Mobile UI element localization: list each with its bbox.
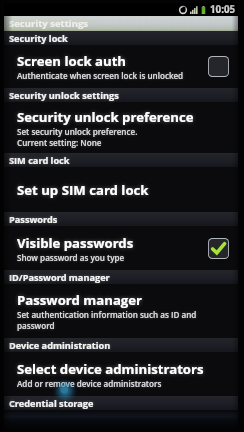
staticText: Select device administrators xyxy=(17,360,204,378)
staticText: Visible passwords xyxy=(17,234,134,252)
staticText: Security lock xyxy=(9,32,68,45)
staticText: Set authentication information such as I… xyxy=(17,309,197,320)
staticText: Authenticate when screen lock is unlocke… xyxy=(17,70,184,81)
staticText: Add or remove device administrators xyxy=(17,378,162,389)
staticText: Security settings xyxy=(9,17,88,30)
button[interactable]: Security lock xyxy=(4,31,238,45)
staticText: Set security unlock preference. xyxy=(17,126,138,137)
button[interactable]: Security unlock preference xyxy=(4,102,238,153)
staticText: Device administration xyxy=(9,339,111,352)
button[interactable]: Set up SIM card lock xyxy=(4,167,238,212)
button[interactable]: Device administration xyxy=(4,338,238,352)
button[interactable]: Security unlock settings xyxy=(4,88,238,102)
staticText: SIM card lock xyxy=(9,154,70,167)
staticText: Credential storage xyxy=(9,397,94,410)
button[interactable]: Toggle Visible passwords xyxy=(208,238,229,259)
button[interactable]: Screen lock auth xyxy=(4,45,238,88)
staticText: Security unlock preference xyxy=(17,108,194,126)
button[interactable]: ID/Password manager xyxy=(4,270,238,284)
staticText: 10:05 xyxy=(210,3,236,16)
staticText: ID/Password manager xyxy=(9,271,110,284)
staticText: password xyxy=(17,320,55,331)
button[interactable]: Credential storage xyxy=(4,396,238,410)
staticText: Screen lock auth xyxy=(17,52,127,70)
button[interactable]: SIM card lock xyxy=(4,153,238,167)
button[interactable]: Passwords xyxy=(4,212,238,226)
button[interactable]: Select device administrators xyxy=(4,352,238,396)
staticText: Current setting: None xyxy=(17,137,102,148)
staticText: Passwords xyxy=(9,213,58,226)
staticText: Show password as you type xyxy=(17,252,125,263)
staticText: Password manager xyxy=(17,291,143,309)
button[interactable]: Toggle Screen lock auth xyxy=(208,56,229,77)
button[interactable]: Security settings xyxy=(4,16,238,31)
button[interactable]: Password manager xyxy=(4,284,238,338)
staticText: Set up SIM card lock xyxy=(17,181,149,199)
button[interactable]: Visible passwords xyxy=(4,226,238,270)
staticText: Security unlock settings xyxy=(9,89,119,102)
